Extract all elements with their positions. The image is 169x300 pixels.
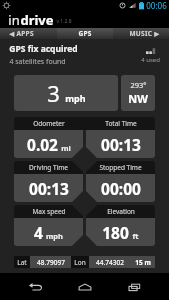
staticText: 00:00 xyxy=(101,178,141,199)
staticText: 44.74302 xyxy=(96,258,124,267)
staticText: NW xyxy=(128,91,148,106)
staticText: Total Time xyxy=(105,119,137,128)
staticText: Stopped Time xyxy=(99,163,142,172)
button[interactable]: 3 xyxy=(14,75,118,111)
button[interactable]: MUSIC ▶ xyxy=(113,28,169,39)
button[interactable]: Elevation xyxy=(86,205,155,246)
button[interactable]: 293° xyxy=(121,75,155,111)
staticText: GPS xyxy=(78,29,92,38)
staticText: 4 xyxy=(34,222,43,243)
staticText: in xyxy=(8,11,20,28)
button[interactable]: Odometer xyxy=(14,117,83,158)
staticText: GPS fix acquired xyxy=(9,43,78,55)
staticText: Lat xyxy=(17,258,27,267)
staticText: Lon xyxy=(74,258,86,267)
staticText: 293° xyxy=(130,80,147,90)
staticText: ft xyxy=(132,231,139,241)
button[interactable]: Max speed xyxy=(14,205,83,246)
staticText: 00:13 xyxy=(101,134,141,155)
staticText: Elevation xyxy=(107,207,135,216)
staticText: 15 m xyxy=(135,258,151,267)
button[interactable]: Driving Time xyxy=(14,161,83,202)
staticText: 4 satellites found xyxy=(9,57,66,67)
button[interactable]: ◀ APPS xyxy=(0,28,57,39)
staticText: 00:06 xyxy=(146,0,167,11)
staticText: mi xyxy=(61,143,71,153)
staticText: mph xyxy=(46,231,63,241)
staticText: Max speed xyxy=(32,207,66,216)
button[interactable]: Stopped Time xyxy=(86,161,155,202)
staticText: v 1.2.8 xyxy=(56,18,72,25)
staticText: 3 xyxy=(47,78,60,108)
staticText: Driving Time xyxy=(29,163,68,172)
staticText: MUSIC ▶ xyxy=(129,29,160,38)
staticText: 4 used xyxy=(141,56,160,64)
button[interactable]: Home xyxy=(70,273,100,300)
staticText: ◀ APPS xyxy=(9,29,34,38)
staticText: drive xyxy=(20,11,54,28)
button[interactable]: Recent apps xyxy=(119,273,149,300)
button[interactable]: Back xyxy=(20,273,50,300)
staticText: 0.02 xyxy=(27,134,58,155)
staticText: Odometer xyxy=(33,119,65,128)
staticText: 00:13 xyxy=(29,178,69,199)
button[interactable]: Total Time xyxy=(86,117,155,158)
staticText: 48.79097 xyxy=(37,258,65,267)
button[interactable]: GPS xyxy=(57,28,113,39)
staticText: 180 xyxy=(102,222,129,243)
staticText: mph xyxy=(65,92,86,104)
